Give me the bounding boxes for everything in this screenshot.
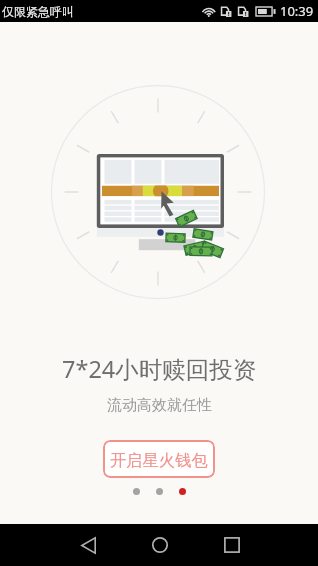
button[interactable]: Back [67,524,109,566]
button[interactable]: 开启星火钱包 [103,440,215,478]
staticText: 7*24小时赎回投资 [62,353,257,385]
staticText: 10:39 [280,2,314,20]
button[interactable]: Recents [211,524,253,566]
button[interactable]: Home [139,524,181,566]
staticText: 流动高效就任性 [107,396,212,415]
staticText: 开启星火钱包 [110,450,208,471]
staticText: 仅限紧急呼叫 [2,4,74,19]
